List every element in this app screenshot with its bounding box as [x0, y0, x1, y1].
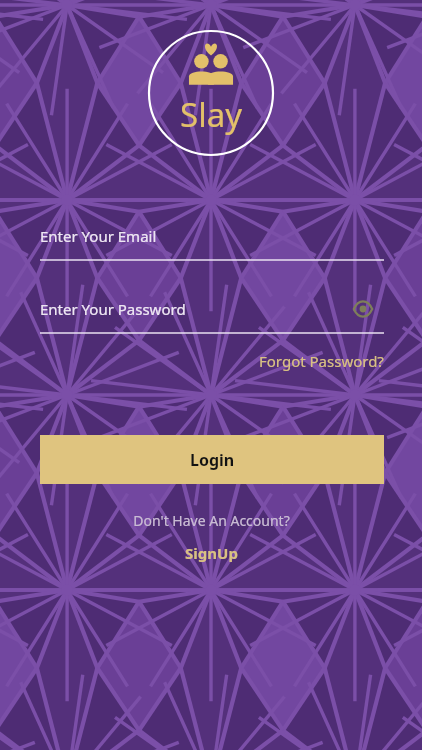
- button[interactable]: SignUp: [141, 540, 281, 566]
- staticText: Enter Your Password: [40, 299, 186, 319]
- button[interactable]: Show password: [350, 296, 376, 322]
- button[interactable]: Enter Your Password: [40, 299, 384, 335]
- staticText: Enter Your Email: [40, 226, 157, 246]
- staticText: SignUp: [185, 543, 238, 563]
- button[interactable]: Forgot Password?: [234, 348, 384, 374]
- staticText: Login: [190, 449, 235, 471]
- staticText: Forgot Password?: [259, 351, 384, 371]
- staticText: Don't Have An Account?: [133, 511, 290, 530]
- staticText: Slay: [180, 92, 242, 137]
- button[interactable]: Enter Your Email: [40, 226, 384, 262]
- button[interactable]: Don't Have An Account?: [61, 508, 361, 532]
- button[interactable]: Login: [40, 435, 384, 484]
- other: Slay logo: [182, 42, 240, 86]
